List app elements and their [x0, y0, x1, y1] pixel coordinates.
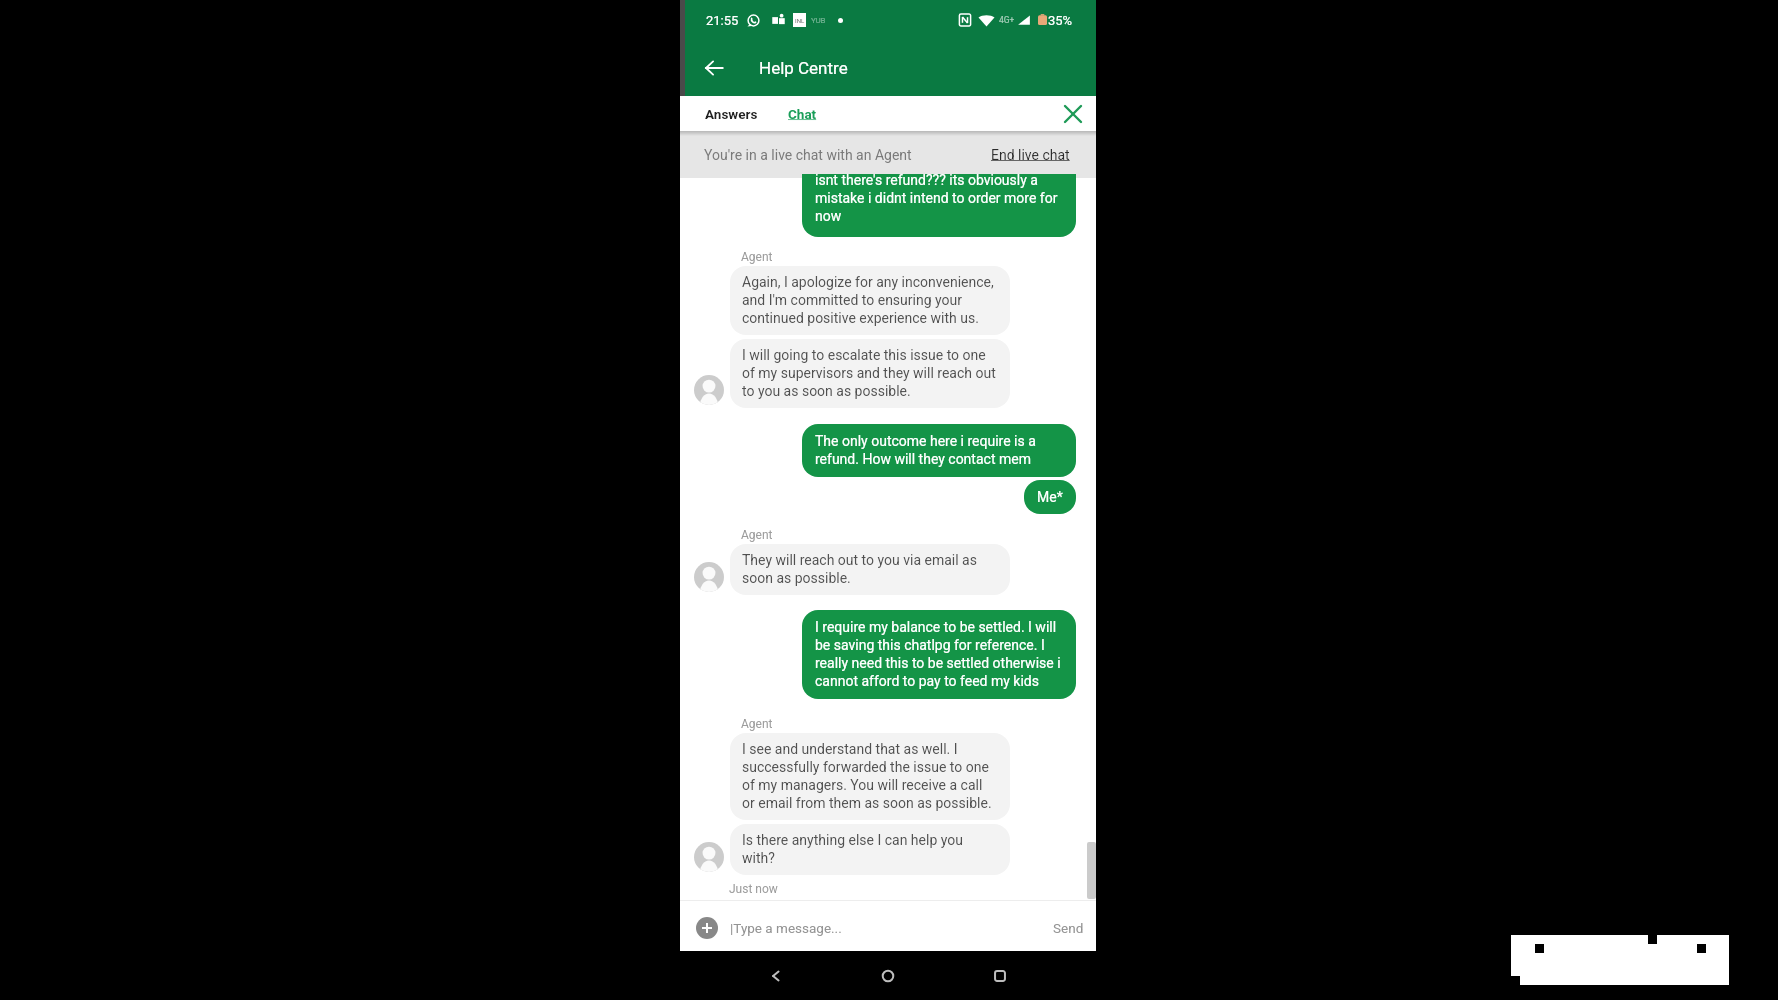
staticText: You're in a live chat with an Agent	[704, 147, 912, 163]
staticText: 21:55	[706, 13, 739, 28]
staticText: I see and understand that as well. I suc…	[742, 741, 998, 812]
staticText: Me*	[1037, 489, 1063, 505]
staticText: Agent	[741, 250, 773, 264]
staticText: 4G+	[999, 15, 1015, 25]
staticText: Send	[1053, 920, 1084, 936]
staticText: I will going to escalate this issue to o…	[742, 347, 998, 400]
staticText: I require my balance to be settled. I wi…	[815, 619, 1063, 690]
staticText: They will reach out to you via email as …	[742, 552, 998, 587]
button[interactable]: Chat	[788, 96, 817, 131]
staticText: Chat	[788, 106, 817, 122]
staticText: Agent	[741, 528, 773, 542]
button[interactable]: Send	[1053, 904, 1084, 951]
button[interactable]: Recent apps	[985, 961, 1015, 991]
staticText: YUB	[811, 16, 826, 25]
button[interactable]: End live chat	[991, 131, 1070, 178]
staticText: Agent	[741, 717, 773, 731]
button[interactable]: Answers	[705, 96, 758, 131]
button[interactable]: Close	[1061, 102, 1085, 126]
staticText: End live chat	[991, 147, 1070, 163]
staticText: INL	[795, 17, 805, 24]
staticText: The only outcome here i require is a ref…	[815, 433, 1063, 468]
button[interactable]: Back	[761, 961, 791, 991]
staticText: Help Centre	[759, 58, 848, 78]
staticText: 35%	[1048, 13, 1073, 28]
staticText: Just now	[729, 882, 778, 896]
staticText: Again, I apologize for any inconvenience…	[742, 274, 998, 327]
staticText: Answers	[705, 106, 758, 122]
button[interactable]: Back	[701, 55, 727, 81]
staticText: |Type a message...	[730, 920, 842, 936]
staticText: Is there anything else I can help you wi…	[742, 832, 998, 867]
staticText: isnt there's refund??? its obviously a m…	[815, 174, 1063, 225]
button[interactable]: Home	[873, 961, 903, 991]
button[interactable]: Add attachment	[696, 917, 718, 939]
